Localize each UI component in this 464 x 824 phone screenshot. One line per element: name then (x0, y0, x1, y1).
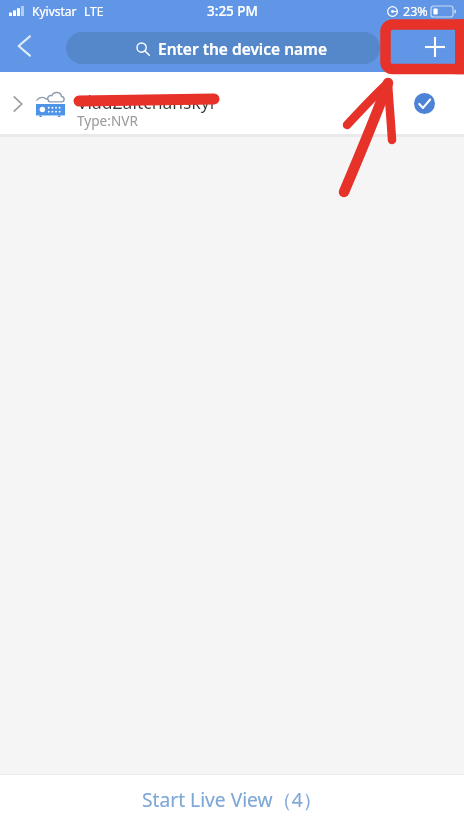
button[interactable]: Enter the device name (66, 32, 380, 64)
staticText: Kyivstar (32, 3, 77, 19)
button[interactable]: Selected (411, 90, 437, 116)
button[interactable]: Start Live View（4） (0, 775, 464, 824)
staticText: VladZaitchanskyi (77, 90, 215, 114)
staticText: Start Live View（4） (142, 786, 322, 812)
button[interactable]: Add device (408, 24, 462, 70)
button[interactable]: VladZaitchanskyi (0, 72, 464, 134)
staticText: LTE (84, 3, 104, 19)
staticText: 3:25 PM (207, 2, 258, 20)
staticText: Enter the device name (158, 38, 328, 59)
staticText: Type:NVR (77, 111, 138, 130)
staticText: 23% (403, 3, 428, 20)
button[interactable]: Back (2, 24, 46, 68)
